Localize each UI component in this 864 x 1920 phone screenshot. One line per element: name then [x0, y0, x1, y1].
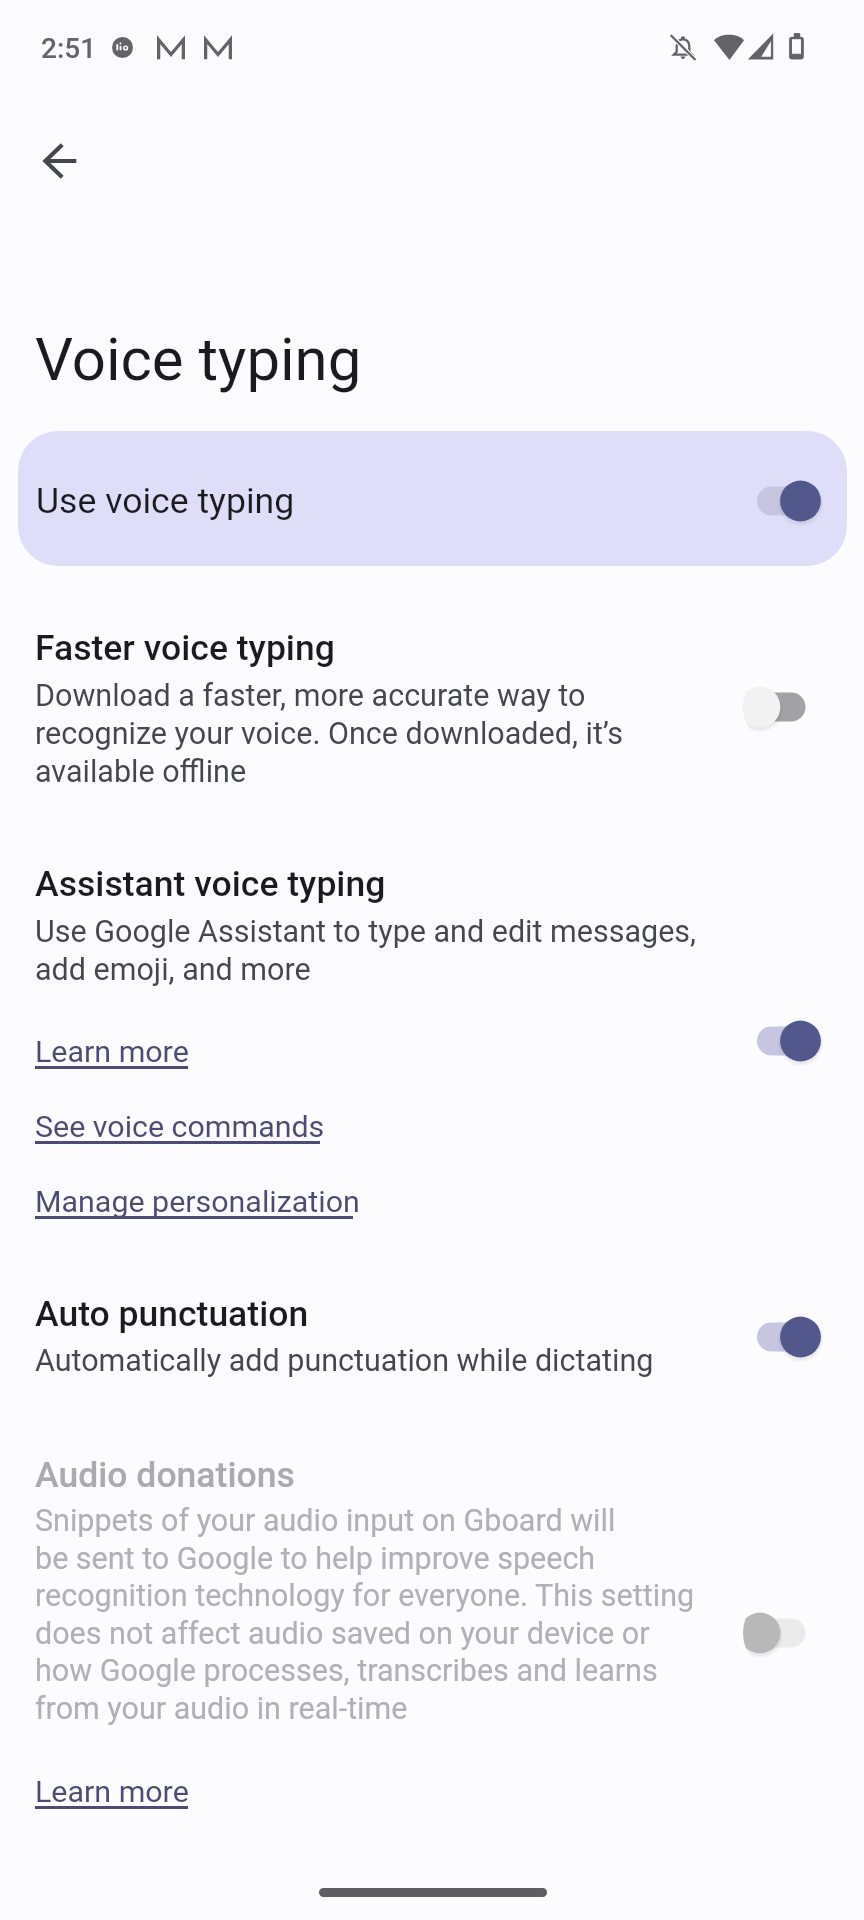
button[interactable]: Auto punctuation: [743, 1295, 835, 1379]
button[interactable]: Use voice typing: [743, 459, 835, 543]
button[interactable]: Manage personalization: [35, 1178, 361, 1230]
staticText: Snippets of your audio input on Gboard w…: [35, 1503, 616, 1539]
staticText: Manage personalization: [35, 1184, 360, 1220]
staticText: Auto punctuation: [35, 1293, 309, 1335]
staticText: Use Google Assistant to type and edit me…: [35, 914, 697, 950]
staticText: Automatically add punctuation while dict…: [35, 1343, 654, 1379]
staticText: add emoji, and more: [35, 952, 311, 988]
button[interactable]: Audio donations: [743, 1591, 835, 1675]
staticText: from your audio in real-time: [35, 1691, 408, 1727]
staticText: Learn more: [35, 1774, 189, 1810]
button[interactable]: Learn more: [35, 1768, 196, 1820]
button[interactable]: [0, 600, 864, 805]
staticText: be sent to Google to help improve speech: [35, 1541, 596, 1577]
staticText: recognize your voice. Once downloaded, i…: [35, 716, 624, 752]
staticText: Audio donations: [35, 1454, 295, 1496]
staticText: available offline: [35, 754, 247, 790]
staticText: Use voice typing: [36, 480, 295, 522]
staticText: Download a faster, more accurate way to: [35, 678, 586, 714]
staticText: 2:51: [41, 32, 97, 65]
button[interactable]: See voice commands: [35, 1103, 328, 1155]
staticText: Assistant voice typing: [35, 863, 386, 905]
button[interactable]: Learn more: [35, 1028, 196, 1080]
staticText: See voice commands: [35, 1109, 325, 1145]
button[interactable]: Faster voice typing: [743, 665, 835, 749]
button[interactable]: [0, 840, 864, 995]
button[interactable]: [0, 1285, 864, 1395]
button[interactable]: Navigate up: [19, 121, 99, 201]
staticText: Faster voice typing: [35, 627, 335, 669]
staticText: how Google processes, transcribes and le…: [35, 1653, 658, 1689]
staticText: Learn more: [35, 1034, 189, 1070]
staticText: Voice typing: [35, 324, 362, 394]
button[interactable]: Assistant voice typing: [743, 999, 835, 1083]
button[interactable]: Use voice typing: [18, 431, 847, 566]
staticText: recognition technology for everyone. Thi…: [35, 1578, 695, 1614]
staticText: does not affect audio saved on your devi…: [35, 1616, 650, 1652]
